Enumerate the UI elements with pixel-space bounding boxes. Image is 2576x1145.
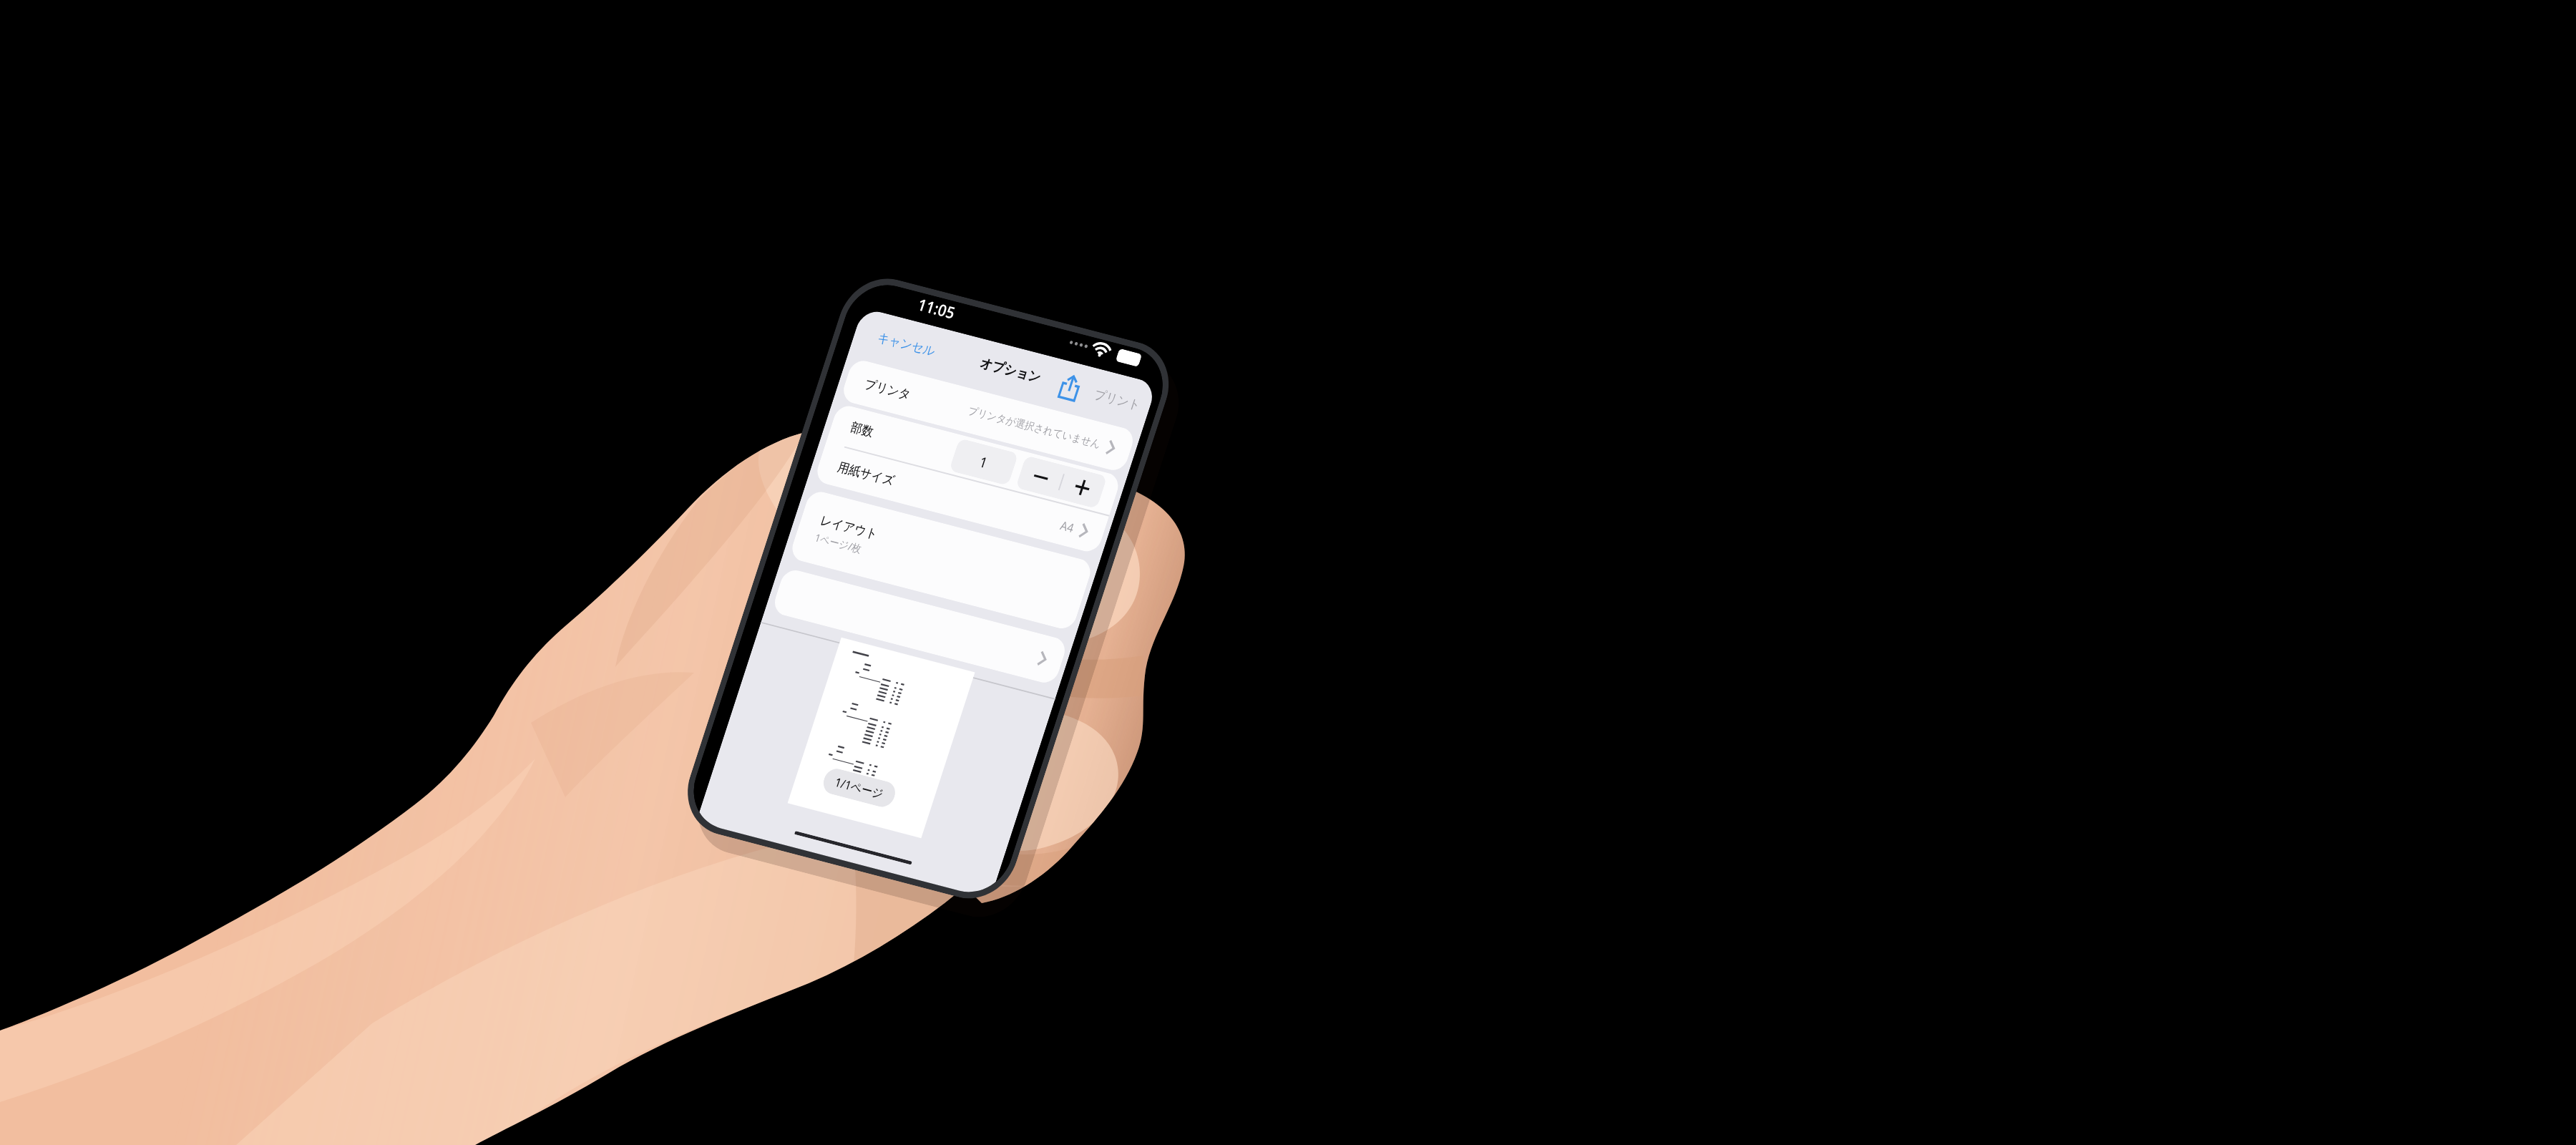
- button[interactable]: Increase copies: [1057, 466, 1107, 509]
- staticText: A4: [1058, 517, 1076, 536]
- staticText: レイアウト: [818, 513, 880, 543]
- staticText: プリンタが選択されていません: [966, 404, 1103, 451]
- button[interactable]: キャンセル: [870, 325, 943, 365]
- staticText: 部数: [848, 419, 876, 441]
- button[interactable]: Decrease copies: [1015, 455, 1066, 498]
- staticText: 1: [977, 452, 990, 472]
- button[interactable]: [771, 567, 1069, 686]
- staticText: 用紙サイズ: [835, 459, 897, 489]
- button[interactable]: 用紙サイズ: [813, 443, 1109, 554]
- staticText: 11:05: [915, 293, 958, 323]
- staticText: キャンセル: [875, 330, 938, 360]
- staticText: 1/1ページ: [833, 774, 886, 802]
- button[interactable]: プリント: [1090, 384, 1145, 416]
- staticText: オプション: [978, 355, 1043, 387]
- button[interactable]: レイアウト: [788, 489, 1094, 631]
- staticText: 1ページ/枚: [813, 530, 864, 556]
- button[interactable]: Share: [1054, 371, 1086, 403]
- staticText: プリント: [1092, 387, 1143, 414]
- staticText: プリンタ: [862, 376, 913, 403]
- button[interactable]: プリンタ: [840, 358, 1137, 473]
